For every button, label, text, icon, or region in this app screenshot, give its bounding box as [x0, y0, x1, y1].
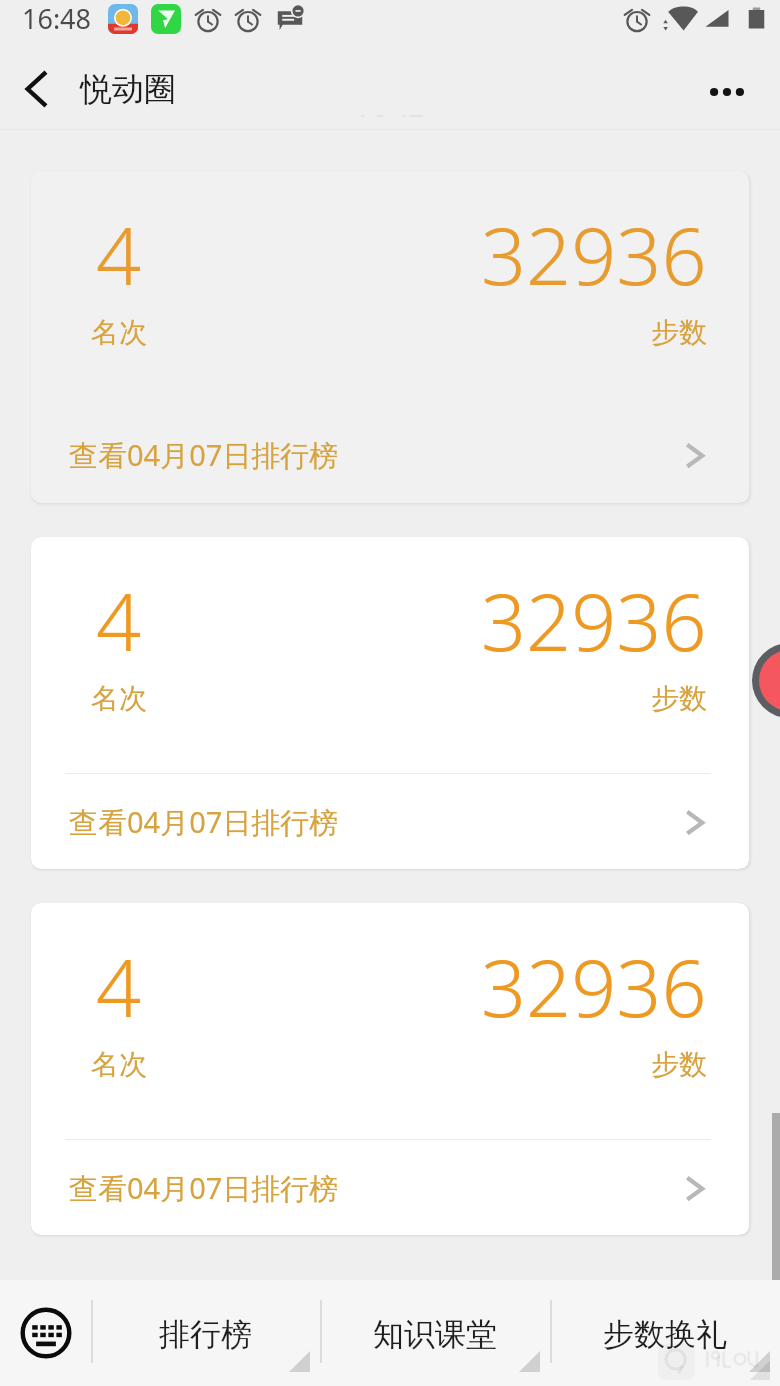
staticText: 4 — [96, 933, 142, 1041]
staticText: 知识课堂 — [373, 1315, 497, 1354]
staticText: 步数 — [651, 315, 707, 350]
staticText: 32936 — [481, 201, 707, 309]
staticText: 16:48 — [22, 0, 92, 37]
staticText: 4 — [96, 201, 142, 309]
button[interactable]: Back — [0, 48, 72, 130]
staticText: 名次 — [91, 1047, 147, 1082]
button[interactable]: 4 — [31, 537, 749, 869]
staticText: 名次 — [91, 681, 147, 716]
staticText: 查看04月07日排行榜 — [69, 802, 339, 842]
button[interactable]: 排行榜 — [91, 1280, 320, 1386]
button[interactable]: Keyboard — [0, 1280, 91, 1386]
staticText: 步数换礼 — [603, 1315, 727, 1354]
staticText: 4 — [96, 567, 142, 675]
button[interactable]: 步数换礼 — [550, 1280, 780, 1386]
staticText: 排行榜 — [159, 1315, 252, 1354]
button[interactable]: 4 — [31, 171, 749, 503]
button[interactable]: 4 — [31, 903, 749, 1235]
staticText: 名次 — [91, 315, 147, 350]
button[interactable]: Quick action — [759, 650, 780, 711]
staticText: 步数 — [651, 681, 707, 716]
staticText: 查看04月07日排行榜 — [69, 1168, 339, 1208]
button[interactable]: 知识课堂 — [320, 1280, 550, 1386]
staticText: 32936 — [481, 933, 707, 1041]
staticText: 查看04月07日排行榜 — [69, 435, 339, 475]
button[interactable]: More options — [692, 48, 780, 130]
staticText: 32936 — [481, 567, 707, 675]
staticText: 悦动圈 — [80, 69, 176, 109]
staticText: 步数 — [651, 1047, 707, 1082]
